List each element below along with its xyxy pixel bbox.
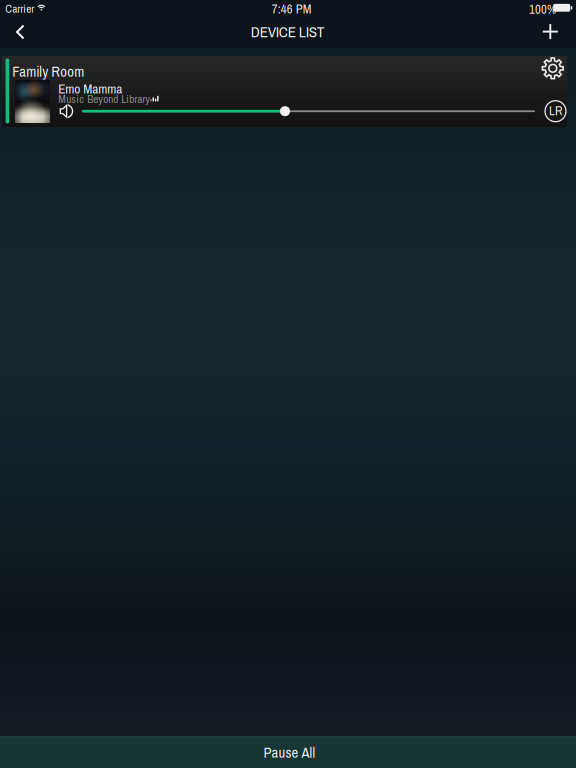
staticText: DEVICE LIST (251, 21, 325, 42)
staticText: LR (549, 102, 562, 119)
staticText: Pause All (263, 743, 315, 762)
staticText: Emo Mamma (58, 80, 122, 98)
button[interactable]: Add device (532, 18, 568, 46)
staticText: Carrier (5, 1, 34, 16)
staticText: Family Room (12, 62, 84, 81)
button[interactable]: Stereo pair L R (542, 98, 568, 124)
button[interactable]: Room settings (533, 53, 573, 83)
button[interactable]: Pause All (0, 736, 576, 768)
staticText: 100% (529, 1, 556, 18)
button[interactable]: Back (3, 18, 37, 46)
staticText: Music Beyond Library (58, 91, 150, 107)
staticText: 7:46 PM (272, 0, 312, 18)
